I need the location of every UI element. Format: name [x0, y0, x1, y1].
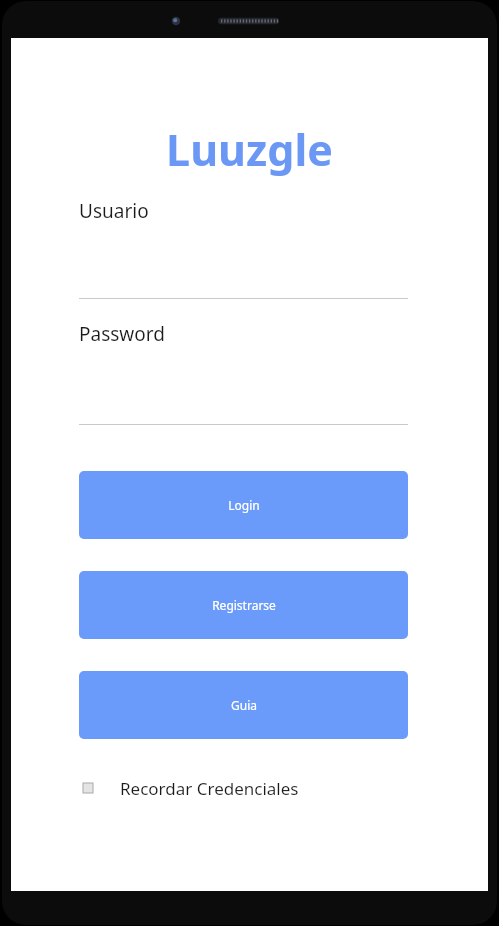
staticText: Guia	[231, 697, 257, 713]
staticText: Recordar Credenciales	[120, 777, 299, 800]
staticText: Luuzgle	[11, 120, 488, 179]
button[interactable]: Registrarse	[79, 571, 408, 639]
staticText: Usuario	[79, 198, 149, 224]
button[interactable]: Guia	[79, 671, 408, 739]
button[interactable]: Recordar Credenciales	[83, 774, 343, 802]
staticText: Login	[228, 497, 260, 513]
button[interactable]: Login	[79, 471, 408, 539]
staticText: Registrarse	[212, 597, 276, 613]
staticText: Password	[79, 321, 165, 347]
